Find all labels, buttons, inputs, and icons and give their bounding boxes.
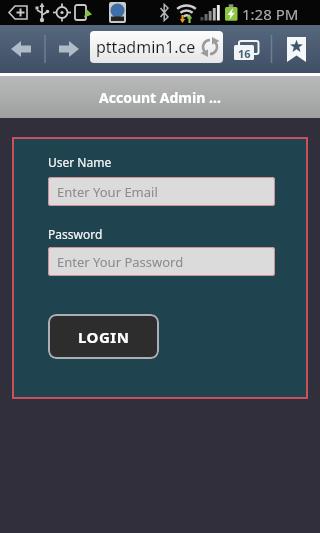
- staticText: User Name: [48, 154, 112, 170]
- button[interactable]: [283, 34, 310, 64]
- button[interactable]: LOGIN: [48, 314, 159, 359]
- button[interactable]: Enter Your Email: [48, 177, 275, 206]
- staticText: 1:28 PM: [242, 4, 299, 24]
- button[interactable]: Enter Your Password: [48, 247, 275, 276]
- staticText: pttadmin1.ce: [96, 36, 196, 58]
- staticText: Account Admin …: [99, 88, 221, 107]
- button[interactable]: pttadmin1.ce: [90, 31, 223, 63]
- button[interactable]: [55, 37, 85, 62]
- button[interactable]: [6, 37, 36, 62]
- staticText: Password: [48, 226, 103, 242]
- staticText: Enter Your Password: [57, 253, 184, 271]
- staticText: 16: [238, 46, 251, 61]
- staticText: LOGIN: [78, 327, 130, 347]
- staticText: Enter Your Email: [57, 183, 158, 201]
- button[interactable]: [230, 37, 262, 62]
